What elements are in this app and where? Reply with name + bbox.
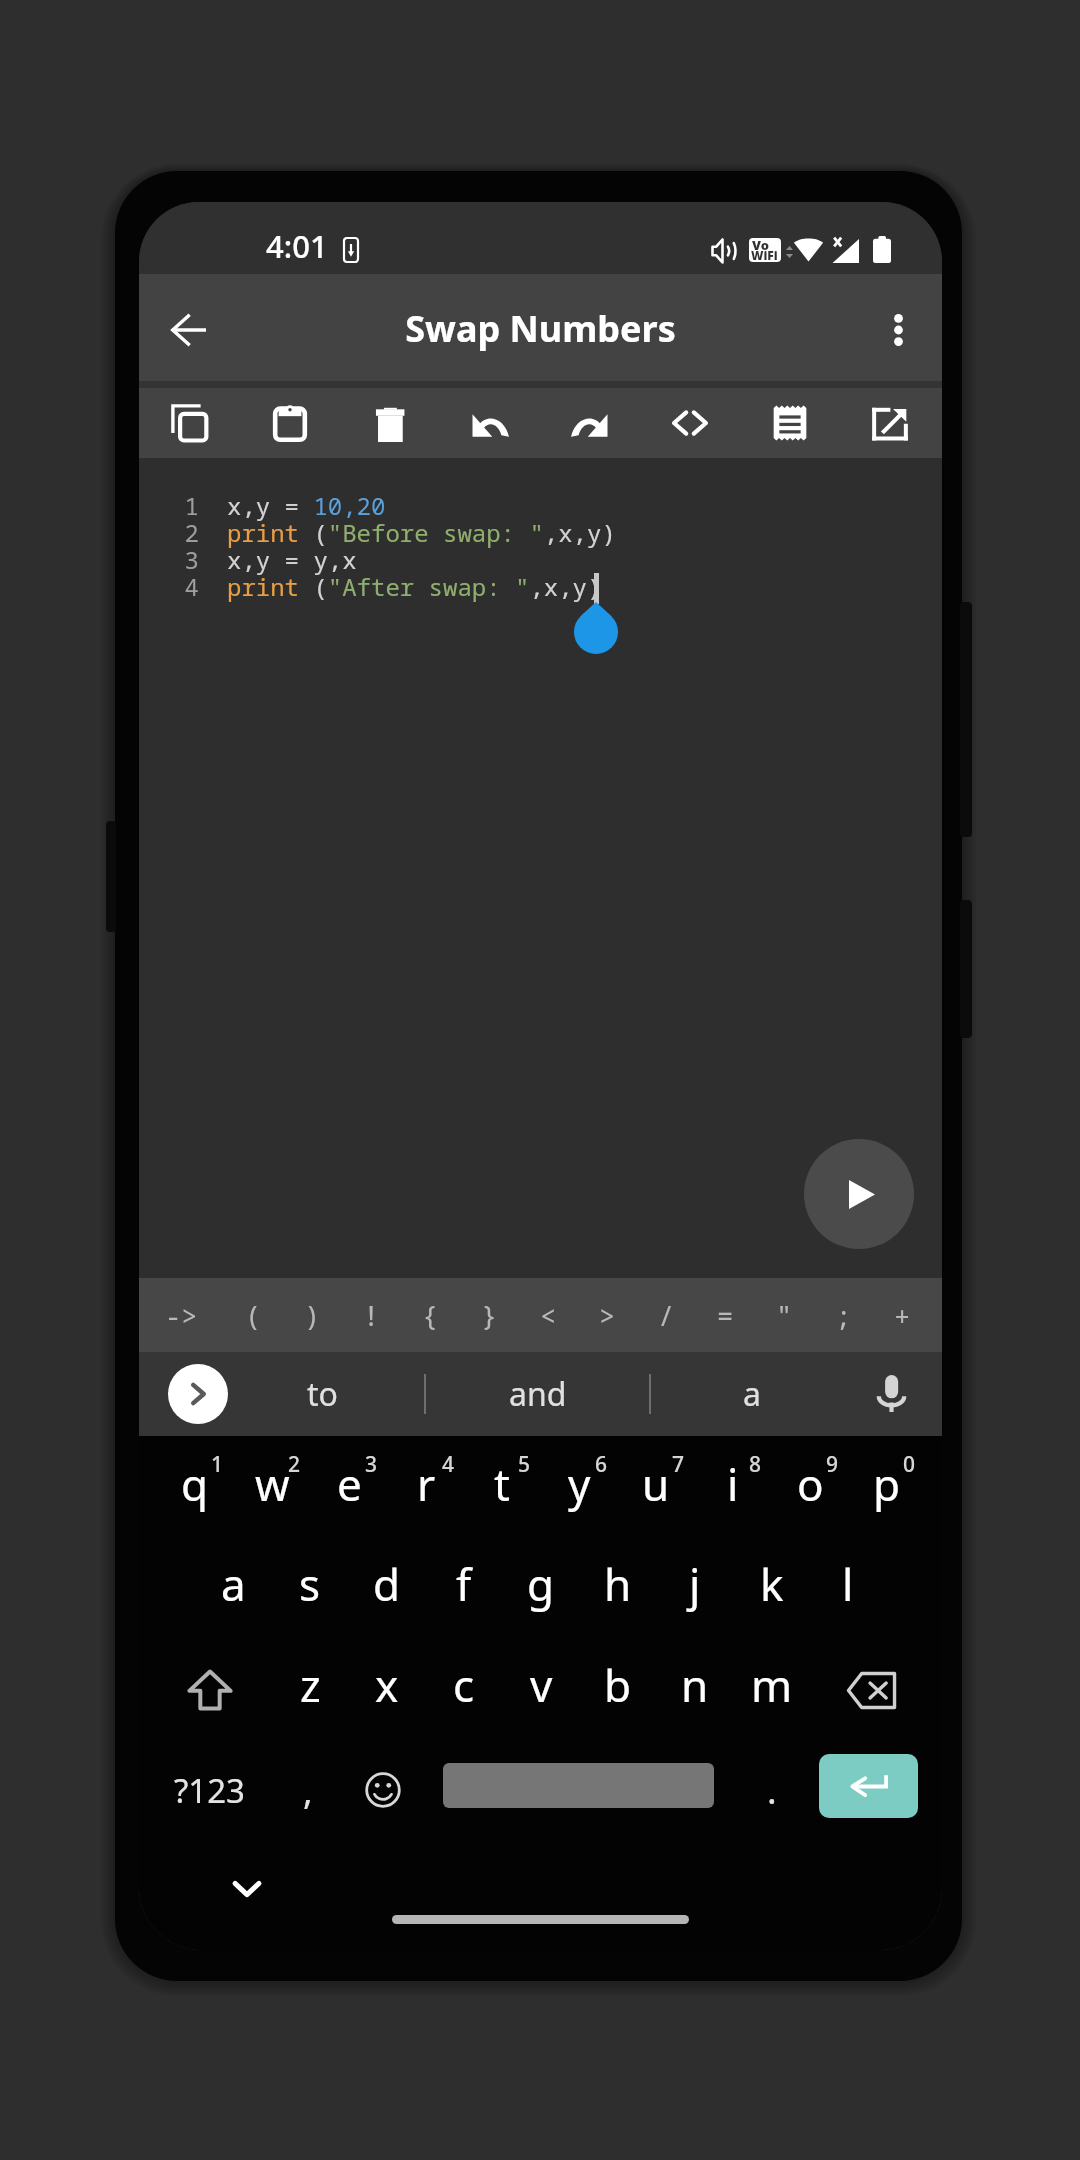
button[interactable]: Open in new window bbox=[856, 389, 924, 457]
button[interactable]: z bbox=[272, 1637, 348, 1733]
button[interactable]: { bbox=[400, 1278, 460, 1352]
button[interactable]: . bbox=[734, 1742, 810, 1838]
button[interactable]: i bbox=[695, 1436, 771, 1532]
button[interactable]: Copy bbox=[156, 389, 224, 457]
button[interactable]: l bbox=[810, 1536, 886, 1632]
button[interactable]: Space bbox=[443, 1763, 714, 1808]
staticText: 4:01 bbox=[266, 225, 328, 267]
button[interactable]: p bbox=[849, 1436, 925, 1532]
staticText: h bbox=[604, 1554, 632, 1614]
staticText: < bbox=[540, 1297, 557, 1334]
button[interactable]: d bbox=[349, 1536, 425, 1632]
staticText: ; bbox=[835, 1297, 852, 1334]
staticText: ?123 bbox=[174, 1768, 245, 1813]
staticText: x bbox=[375, 1655, 399, 1715]
button[interactable]: w bbox=[234, 1436, 310, 1532]
button[interactable]: Show more suggestions bbox=[168, 1364, 228, 1424]
button[interactable]: + bbox=[872, 1278, 932, 1352]
button[interactable]: k bbox=[734, 1536, 810, 1632]
staticText: Swap Numbers bbox=[139, 304, 942, 353]
button[interactable]: Back bbox=[155, 296, 223, 364]
button[interactable]: g bbox=[503, 1536, 579, 1632]
button[interactable]: > bbox=[577, 1278, 637, 1352]
button[interactable]: Undo bbox=[456, 389, 524, 457]
staticText: z bbox=[300, 1655, 321, 1715]
staticText: k bbox=[760, 1554, 784, 1614]
button[interactable]: } bbox=[459, 1278, 519, 1352]
button[interactable]: Shift bbox=[162, 1642, 258, 1738]
button[interactable]: e bbox=[311, 1436, 387, 1532]
staticText: / bbox=[658, 1297, 675, 1334]
button[interactable]: q bbox=[157, 1436, 233, 1532]
button[interactable]: t bbox=[464, 1436, 540, 1532]
button[interactable]: Paste bbox=[256, 389, 324, 457]
button[interactable]: o bbox=[772, 1436, 848, 1532]
button[interactable]: n bbox=[657, 1637, 733, 1733]
button[interactable]: Insert code bbox=[656, 389, 724, 457]
button[interactable]: a bbox=[195, 1536, 271, 1632]
button[interactable]: and bbox=[438, 1352, 638, 1436]
button[interactable]: r bbox=[388, 1436, 464, 1532]
staticText: w bbox=[255, 1454, 290, 1514]
staticText: } bbox=[481, 1297, 498, 1334]
button[interactable]: j bbox=[657, 1536, 733, 1632]
staticText: ( bbox=[245, 1297, 262, 1334]
button[interactable]: y bbox=[541, 1436, 617, 1532]
staticText: 8 bbox=[749, 1450, 762, 1479]
button[interactable]: f bbox=[426, 1536, 502, 1632]
button[interactable]: c bbox=[426, 1637, 502, 1733]
staticText: c bbox=[453, 1655, 475, 1715]
button[interactable]: u bbox=[618, 1436, 694, 1532]
button[interactable]: m bbox=[734, 1637, 810, 1733]
button[interactable]: ( bbox=[223, 1278, 283, 1352]
staticText: 4 bbox=[169, 570, 199, 603]
staticText: 6 bbox=[595, 1450, 608, 1479]
staticText: 3 bbox=[365, 1450, 378, 1479]
staticText: e bbox=[337, 1454, 362, 1514]
button[interactable]: Hide keyboard bbox=[217, 1863, 277, 1915]
staticText: " bbox=[776, 1297, 793, 1334]
button[interactable]: Emoji bbox=[345, 1742, 421, 1838]
button[interactable]: ?123 bbox=[149, 1742, 269, 1838]
staticText: Vo bbox=[752, 238, 770, 254]
button[interactable]: Backspace bbox=[823, 1642, 919, 1738]
button[interactable]: = bbox=[695, 1278, 755, 1352]
button[interactable]: a bbox=[652, 1352, 852, 1436]
staticText: a bbox=[743, 1372, 761, 1416]
staticText: b bbox=[604, 1655, 632, 1715]
button[interactable]: Redo bbox=[556, 389, 624, 457]
button[interactable]: b bbox=[580, 1637, 656, 1733]
staticText: 5 bbox=[518, 1450, 531, 1479]
button[interactable]: to bbox=[222, 1352, 422, 1436]
button[interactable]: Delete bbox=[356, 389, 424, 457]
staticText: ! bbox=[363, 1297, 380, 1334]
staticText: r bbox=[417, 1454, 436, 1514]
button[interactable]: ) bbox=[282, 1278, 342, 1352]
button[interactable]: Run bbox=[804, 1139, 914, 1249]
button[interactable]: < bbox=[518, 1278, 578, 1352]
staticText: . bbox=[767, 1766, 777, 1815]
button[interactable]: v bbox=[503, 1637, 579, 1733]
button[interactable]: -> bbox=[151, 1278, 211, 1352]
button[interactable]: Voice input bbox=[862, 1361, 920, 1426]
staticText: and bbox=[509, 1372, 567, 1416]
button[interactable]: ; bbox=[813, 1278, 873, 1352]
button[interactable]: , bbox=[270, 1742, 346, 1838]
button[interactable]: s bbox=[272, 1536, 348, 1632]
button[interactable]: More options bbox=[864, 296, 932, 364]
button[interactable]: Enter bbox=[819, 1754, 918, 1818]
staticText: i bbox=[727, 1454, 739, 1514]
staticText: print ("Before swap: ",x,y) bbox=[227, 516, 616, 549]
staticText: s bbox=[299, 1554, 321, 1614]
button[interactable]: x bbox=[349, 1637, 425, 1733]
button[interactable]: Output bbox=[756, 389, 824, 457]
staticText: u bbox=[642, 1454, 670, 1514]
button[interactable]: " bbox=[754, 1278, 814, 1352]
button[interactable]: ! bbox=[341, 1278, 401, 1352]
staticText: 4 bbox=[442, 1450, 455, 1479]
staticText: 7 bbox=[672, 1450, 685, 1479]
staticText: 9 bbox=[826, 1450, 839, 1479]
button[interactable]: h bbox=[580, 1536, 656, 1632]
staticText: ) bbox=[304, 1297, 321, 1334]
button[interactable]: / bbox=[636, 1278, 696, 1352]
